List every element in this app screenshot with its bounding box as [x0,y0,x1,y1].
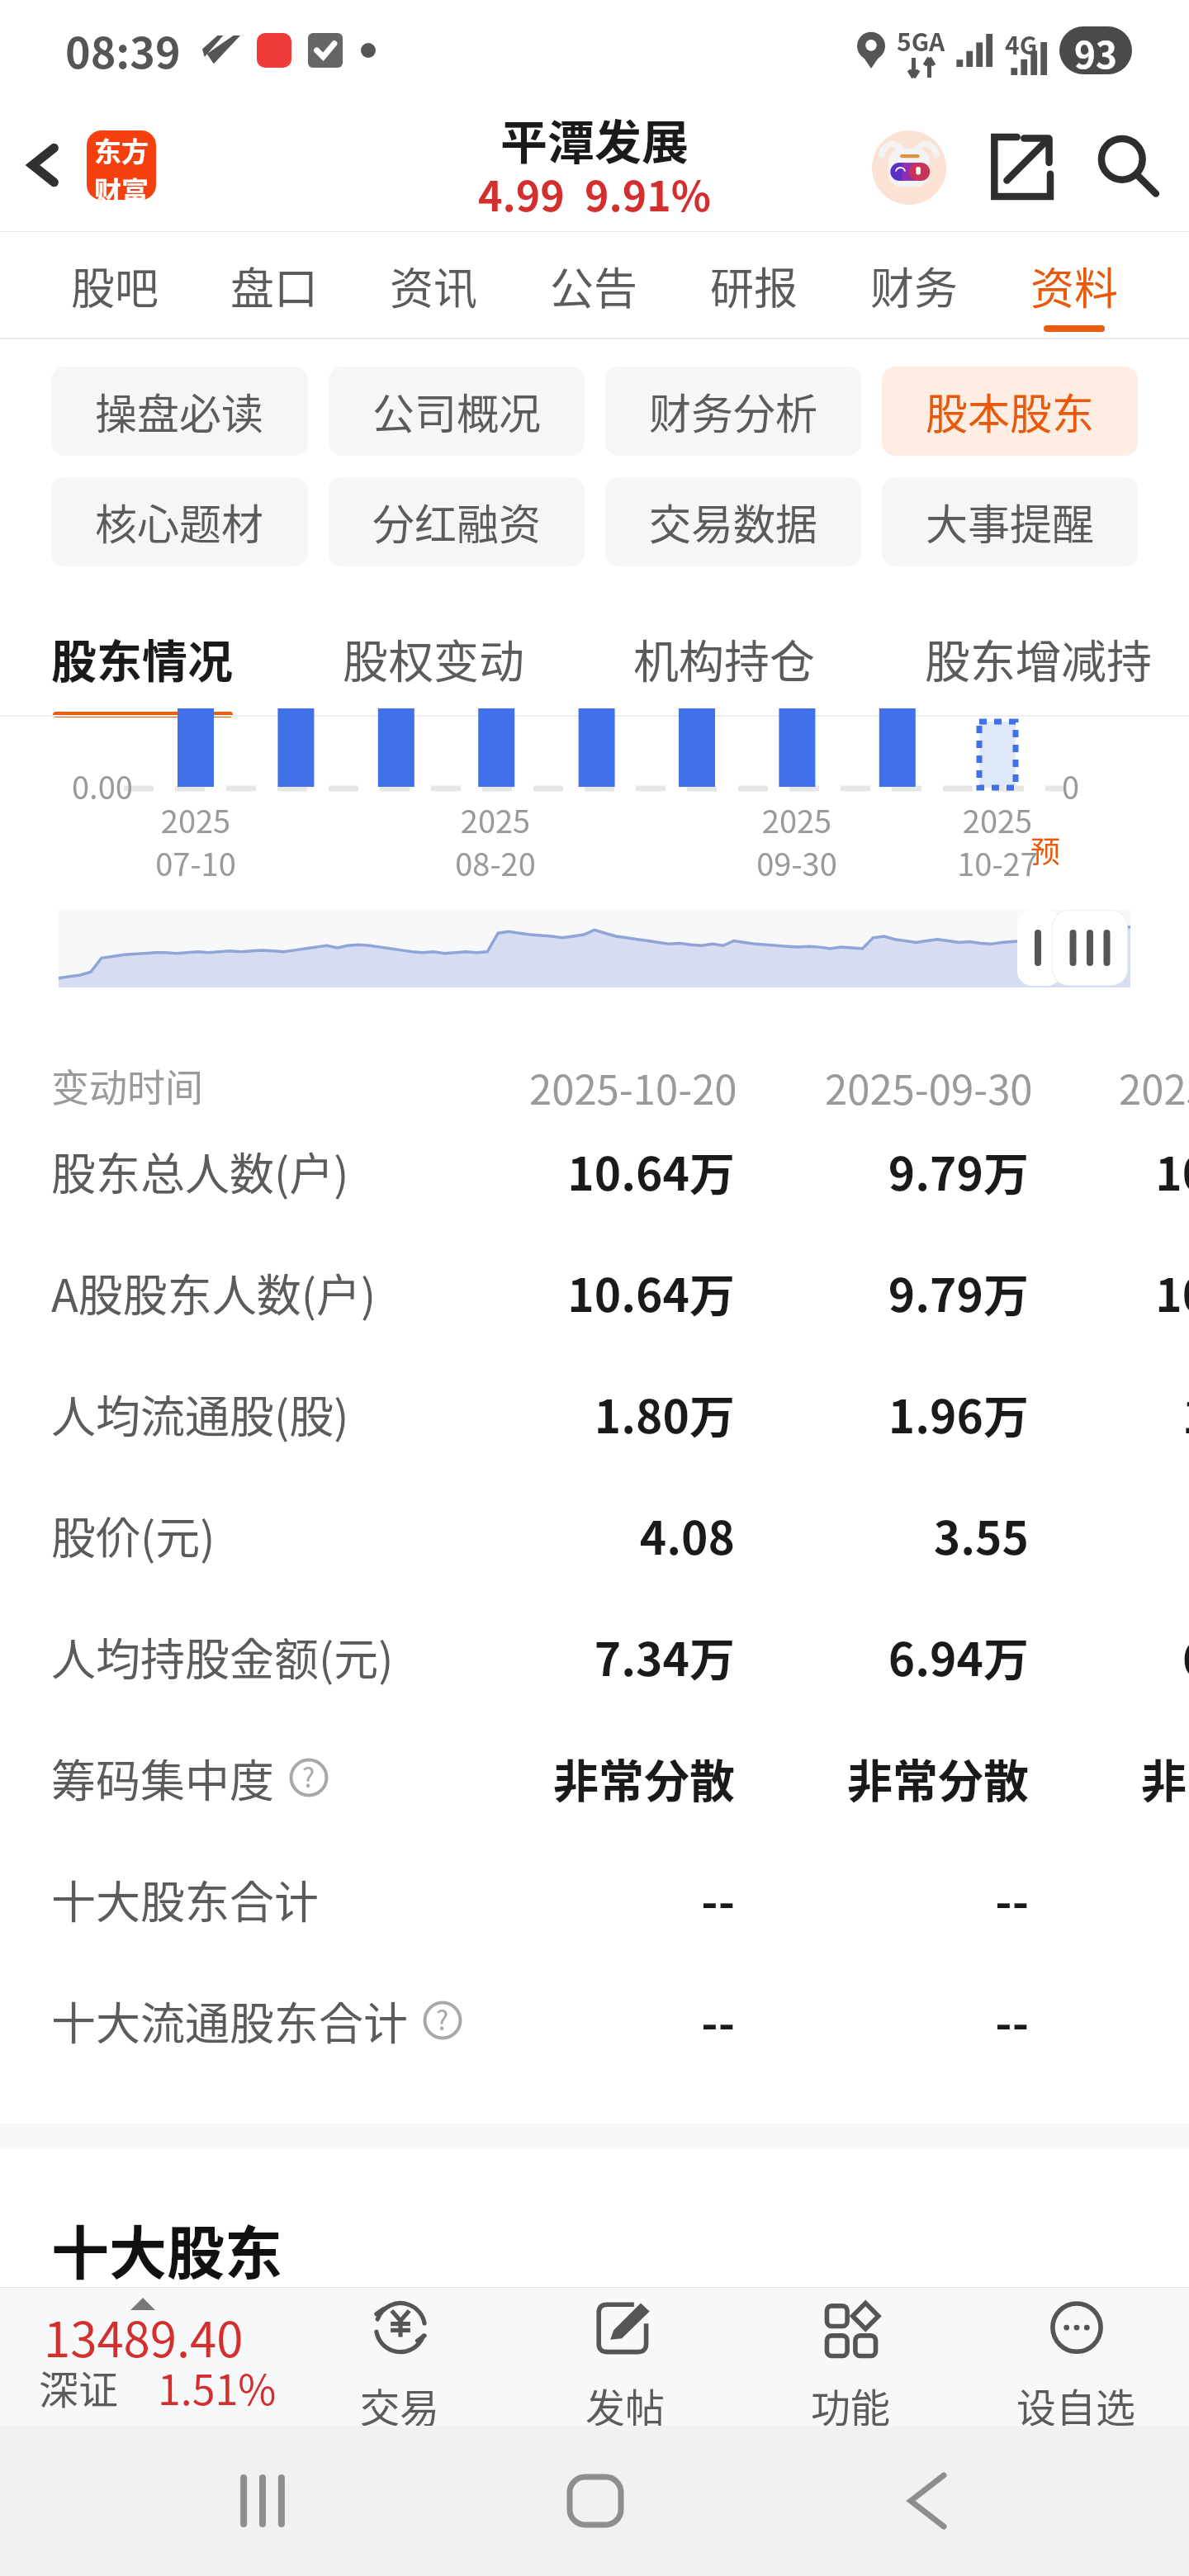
button[interactable]: 研报 [674,232,834,338]
staticText: 核心题材 [95,491,264,552]
staticText: 公告 [550,254,637,318]
button[interactable]: 操盘必读 [51,367,308,456]
staticText: 10.64万 [0,1259,735,1325]
button[interactable]: Search [1098,135,1158,195]
button[interactable]: 发帖 [513,2287,738,2426]
staticText: 人均持股金额(元) [51,1624,394,1688]
staticText: 股权变动 [343,625,525,691]
button[interactable]: 股东增减持 [925,566,1153,715]
staticText: 十大流通股东合计 [51,1988,408,2053]
staticText: 10-27 [898,840,1097,885]
button[interactable]: 公司概况 [329,367,585,456]
button[interactable]: 公告 [514,232,674,338]
button[interactable]: 大事提醒 [882,477,1138,566]
staticText: ? [302,1757,315,1795]
staticText: 筹码集中度 [51,1745,274,1810]
staticText: 财务分析 [649,381,818,442]
staticText: 2025 [396,797,594,842]
button[interactable]: 分红融资 [329,477,585,566]
staticText: 资料 [1030,254,1118,318]
staticText: 9.79万 [0,1138,1029,1204]
button[interactable]: AI assistant [872,130,946,205]
button[interactable]: 资讯 [353,232,514,338]
staticText: ? [436,2000,449,2038]
staticText: 股本股东 [926,381,1095,442]
button[interactable]: 股本股东 [882,367,1138,456]
button[interactable]: 核心题材 [51,477,308,566]
staticText: 设自选 [1016,2376,1136,2434]
staticText: 财务 [870,254,958,318]
button[interactable]: 资料 [994,232,1154,338]
staticText: 93 [1074,26,1117,74]
staticText: 1.51% [158,2357,277,2417]
staticText: -- [0,1866,1029,1932]
button[interactable]: Multi column [1053,911,1127,985]
staticText: 发帖 [585,2376,666,2434]
button[interactable]: 股吧 [35,232,194,338]
button[interactable]: Share [991,137,1050,197]
button[interactable]: 财务 [834,232,994,338]
staticText: 研报 [710,254,798,318]
button[interactable]: 盘口 [194,232,353,338]
staticText: 股东增减持 [925,625,1153,691]
staticText: 2025 [1119,1058,1189,1110]
staticText: 07-10 [97,840,295,885]
staticText: 东方 [94,130,149,170]
staticText: 2025-10-20 [529,1058,737,1110]
staticText: 5GA [897,22,945,58]
button[interactable]: Back [23,144,66,187]
staticText: 9.79万 [0,1259,1029,1325]
staticText: 08-20 [396,840,594,885]
button[interactable]: 13489.40 [0,2287,287,2426]
button[interactable]: Home [514,2426,676,2576]
staticText: 2025 [898,797,1097,842]
staticText: 08:39 [65,19,181,81]
staticText: 6.08万 [1120,1623,1189,1689]
staticText: 股吧 [71,254,159,318]
staticText: 7.34万 [0,1623,735,1689]
staticText: 非常分散 [0,1745,735,1811]
staticText: 4.99 [478,163,565,223]
staticText: 股价(元) [51,1503,216,1567]
staticText: 股东总人数(户) [51,1139,349,1203]
staticText: 09-30 [698,840,896,885]
button[interactable]: Single column [1017,910,1062,986]
button[interactable]: 交易数据 [605,477,861,566]
staticText: 交易 [360,2376,440,2434]
button[interactable]: 股东情况 [51,566,234,715]
staticText: 10.64万 [0,1138,735,1204]
staticText: 9.91% [585,163,711,223]
staticText: 预 [1030,828,1061,871]
staticText: 深证 [39,2358,119,2416]
staticText: -- [0,1987,735,2053]
staticText: 1.80万 [0,1380,735,1447]
staticText: 变动时间 [51,1058,203,1110]
staticText: 4G [1005,26,1038,61]
staticText: 平潭发展 [500,105,689,173]
staticText: 3.55 [0,1502,1029,1568]
staticText: 操盘必读 [95,381,264,442]
staticText: 0.00 [72,763,133,808]
staticText: 人均流通股(股) [51,1381,349,1446]
staticText: 十大股东合计 [51,1867,319,1931]
button[interactable]: 机构持仓 [633,566,816,715]
button[interactable]: 交易 [287,2287,513,2426]
staticText: 功能 [811,2376,891,2434]
staticText: 4.08 [0,1502,735,1568]
staticText: 十大股东 [51,2208,282,2287]
staticText: A股股东人数(户) [51,1260,377,1324]
button[interactable]: 财务分析 [605,367,861,456]
button[interactable]: 功能 [738,2287,964,2426]
button[interactable]: 股权变动 [343,566,525,715]
staticText: 10.11万 [1120,1138,1189,1204]
button[interactable]: 设自选 [964,2287,1189,2426]
staticText: 10.11万 [1120,1259,1189,1325]
staticText: 0 [1062,763,1080,808]
button[interactable]: Back [846,2426,1007,2576]
button[interactable]: Recents [182,2426,343,2576]
staticText: 机构持仓 [633,625,816,691]
staticText: 1.90万 [1120,1380,1189,1447]
